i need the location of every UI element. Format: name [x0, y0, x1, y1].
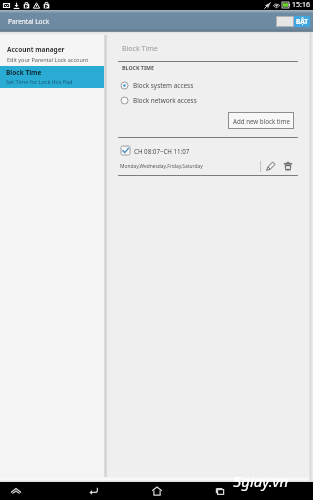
button[interactable]: Back [84, 482, 104, 500]
button[interactable]: Block Time [0, 66, 104, 88]
staticText: Monday,Wednesday,Friday,Saturday [120, 163, 203, 170]
button[interactable]: Delete [282, 160, 294, 172]
staticText: Block Time [6, 68, 42, 77]
staticText: CH 08:07~CH 11:07 [134, 147, 190, 155]
staticText: Set Time for Lock this Pad [6, 78, 73, 85]
button[interactable]: Add new block time [228, 112, 294, 129]
button[interactable]: Edit [265, 160, 277, 172]
staticText: Add new block time [233, 117, 290, 125]
staticText: 15:16 [292, 0, 310, 10]
staticText: BLOCK TIME [122, 64, 154, 71]
staticText: BẬT [296, 17, 309, 26]
staticText: Parental Lock [8, 17, 50, 26]
staticText: Account manager [7, 45, 65, 54]
staticText: Block network access [133, 96, 197, 105]
button[interactable]: Account manager [0, 45, 104, 63]
button[interactable]: Recents [210, 482, 230, 500]
button[interactable]: Hide keyboard [6, 482, 26, 500]
staticText: Block Time [122, 44, 158, 54]
staticText: 5giay.vn [233, 471, 289, 491]
button[interactable]: Toggle Parental Lock [276, 16, 310, 27]
button[interactable]: CH 08:07~CH 11:07 [104, 138, 313, 176]
button[interactable]: Block system access [104, 80, 313, 91]
staticText: Block system access [133, 81, 194, 90]
button[interactable]: Block network access [104, 95, 313, 106]
staticText: Edit your Parental Lock account [7, 56, 89, 63]
button[interactable]: Home [147, 482, 167, 500]
